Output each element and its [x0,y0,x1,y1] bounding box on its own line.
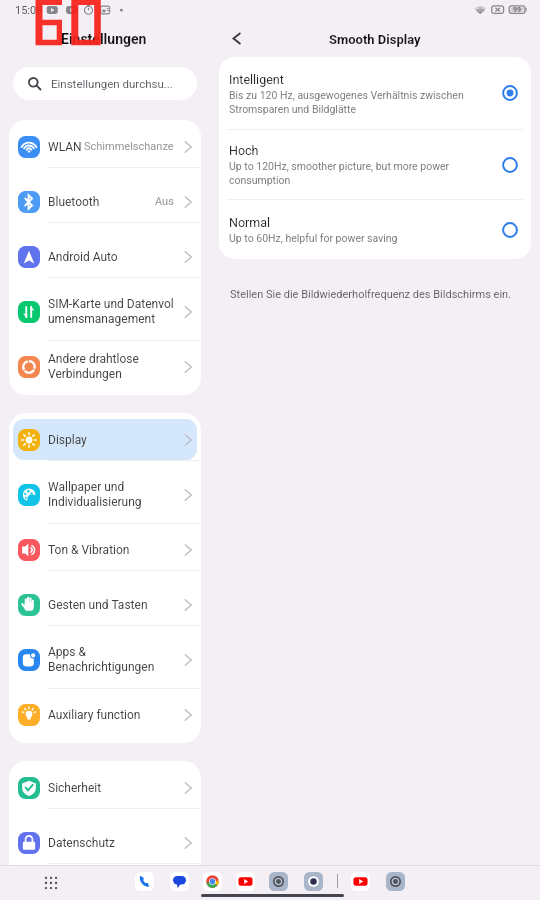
button[interactable]: All apps [37,869,64,896]
staticText: Aus [155,195,174,208]
staticText: Display [48,433,87,447]
staticText: Auxiliary function [48,708,141,722]
button[interactable]: cam1 [386,872,405,891]
button[interactable]: phone [135,872,154,891]
button[interactable]: Ton & Vibration [13,529,197,570]
button[interactable]: Andere drahtlose Verbindungen [13,346,197,387]
staticText: Up to 120Hz, smoother picture, but more … [229,160,450,186]
button[interactable]: Datenschutz [13,822,197,863]
staticText: Bis zu 120 Hz, ausgewogenes Verhältnis z… [229,89,464,115]
staticText: SIM-Karte und Datenvol umensmanagement [48,297,174,326]
staticText: Normal [229,215,271,230]
staticText: Apps & Benachrichtigungen [48,645,155,674]
staticText: 15:09 [15,4,43,17]
button[interactable]: Intelligent [219,57,531,129]
button[interactable]: Gesten und Tasten [13,584,197,625]
staticText: Sicherheit [48,781,102,795]
button[interactable]: yt [236,872,255,891]
button[interactable]: Normal [219,200,531,259]
button[interactable]: cam2 [304,872,323,891]
staticText: Up to 60Hz, helpful for power saving [229,232,398,244]
button[interactable]: cam1 [269,872,288,891]
button[interactable]: Apps & Benachrichtigungen [13,639,197,680]
button[interactable]: WLAN [13,126,197,167]
staticText: Schimmelschanze [84,140,174,153]
button[interactable]: SIM-Karte und Datenvol umensmanagement [13,291,197,332]
staticText: Einstellungen [61,31,147,47]
button[interactable]: Display [13,419,197,460]
button[interactable]: Hoch [219,130,531,199]
button[interactable]: Standort [13,877,197,900]
button[interactable]: msg [170,872,189,891]
button[interactable]: Android Auto [13,236,197,277]
staticText: Hoch [229,143,259,158]
staticText: Intelligent [229,72,284,87]
staticText: Android Auto [48,250,118,264]
staticText: Datenschutz [48,836,115,850]
button[interactable]: Wallpaper und Individualisierung [13,474,197,515]
button[interactable]: Back [222,24,250,52]
staticText: 99 [513,6,521,14]
staticText: Wallpaper und Individualisierung [48,480,142,509]
staticText: WLAN [48,140,82,154]
staticText: Einstellungen durchsu... [51,77,173,90]
staticText: Bluetooth [48,195,100,209]
button[interactable]: Auxiliary function [13,694,197,735]
staticText: Andere drahtlose Verbindungen [48,352,139,381]
button[interactable]: chrome [203,872,222,891]
button[interactable]: Bluetooth [13,181,197,222]
button[interactable]: Einstellungen durchsu... [13,67,197,100]
staticText: Smooth Display [329,32,421,47]
staticText: Ton & Vibration [48,543,130,557]
button[interactable]: yt [351,872,370,891]
staticText: Gesten und Tasten [48,598,148,612]
button[interactable]: Sicherheit [13,767,197,808]
staticText: Stellen Sie die Bildwiederholfrequenz de… [230,288,512,301]
